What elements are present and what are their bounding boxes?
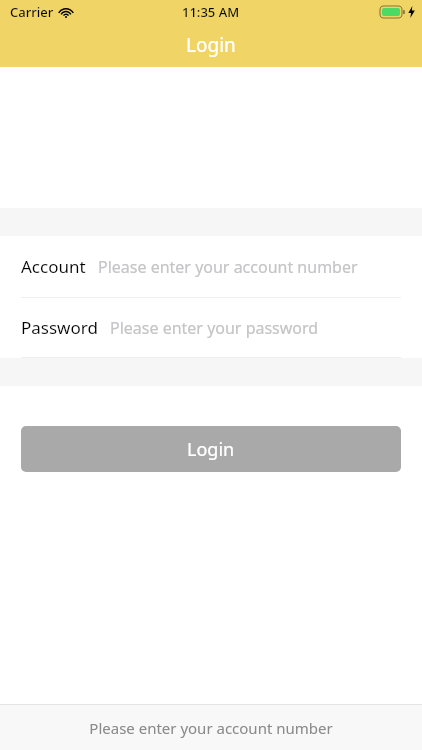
button[interactable]: Account: [0, 236, 422, 297]
staticText: Please enter your account number: [89, 718, 333, 738]
button[interactable]: Password: [0, 297, 422, 358]
staticText: Carrier: [10, 3, 54, 21]
staticText: Account: [21, 255, 86, 278]
staticText: Please enter your account number: [98, 256, 358, 278]
staticText: Login: [186, 32, 236, 58]
staticText: Please enter your password: [110, 317, 319, 339]
button[interactable]: Login: [21, 426, 401, 472]
staticText: 11:35 AM: [182, 3, 240, 21]
staticText: Login: [187, 437, 235, 462]
staticText: Password: [21, 316, 98, 339]
